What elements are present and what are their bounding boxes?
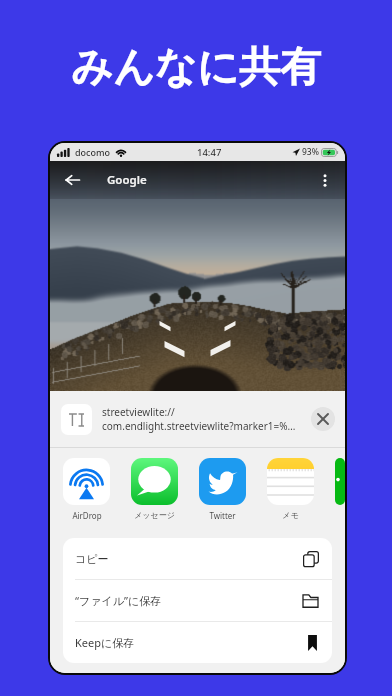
- staticText: Google: [107, 172, 147, 188]
- staticText: メッセージ: [134, 510, 175, 520]
- staticText: streetviewlite://: [102, 405, 175, 419]
- staticText: 93%: [302, 146, 319, 158]
- button[interactable]: More options: [305, 161, 345, 199]
- staticText: AirDrop: [72, 510, 102, 521]
- button[interactable]: [335, 458, 345, 521]
- staticText: “ファイル”に保存: [75, 593, 162, 608]
- staticText: Keepに保存: [75, 635, 135, 650]
- staticText: 14:47: [197, 146, 222, 159]
- staticText: com.endlight.streetviewlite?marker1=%…: [102, 419, 296, 433]
- button[interactable]: “ファイル”に保存: [63, 580, 332, 621]
- staticText: Twitter: [209, 510, 236, 521]
- staticText: docomo: [75, 146, 111, 158]
- button[interactable]: AirDrop: [63, 458, 110, 521]
- button[interactable]: コピー: [63, 538, 332, 579]
- staticText: みんなに共有: [71, 42, 321, 94]
- button[interactable]: Close: [311, 407, 335, 431]
- button[interactable]: Keepに保存: [63, 622, 332, 663]
- staticText: コピー: [75, 552, 109, 566]
- button[interactable]: メモ: [267, 458, 314, 520]
- button[interactable]: メッセージ: [131, 458, 178, 520]
- staticText: メモ: [282, 510, 299, 520]
- button[interactable]: Back: [50, 161, 94, 199]
- button[interactable]: Twitter: [199, 458, 246, 521]
- button[interactable]: streetviewlite://: [50, 391, 345, 447]
